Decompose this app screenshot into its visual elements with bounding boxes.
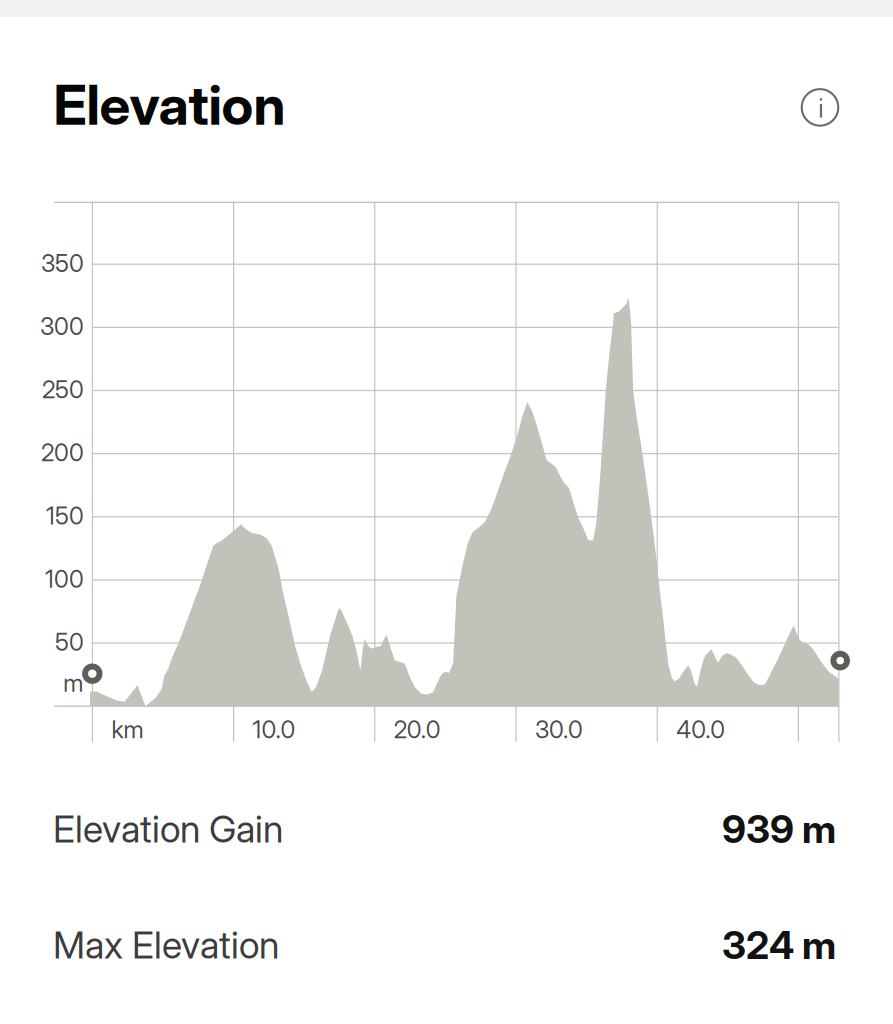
staticText: 150 <box>46 501 84 530</box>
staticText: m <box>63 668 83 697</box>
button[interactable]: About elevation <box>791 78 849 136</box>
staticText: Max Elevation <box>53 922 279 968</box>
staticText: 939 m <box>722 806 836 852</box>
staticText: 300 <box>40 312 84 341</box>
staticText: 30.0 <box>535 715 583 744</box>
staticText: 10.0 <box>253 715 296 744</box>
staticText: Elevation <box>54 72 286 138</box>
staticText: 350 <box>41 249 84 278</box>
staticText: 324 m <box>722 922 836 968</box>
staticText: 100 <box>45 564 84 593</box>
staticText: 40.0 <box>676 715 725 744</box>
staticText: Elevation Gain <box>53 806 283 852</box>
staticText: 20.0 <box>394 715 441 744</box>
staticText: 250 <box>42 375 84 404</box>
staticText: 50 <box>55 627 84 656</box>
staticText: 200 <box>41 438 84 467</box>
staticText: km <box>111 715 143 744</box>
